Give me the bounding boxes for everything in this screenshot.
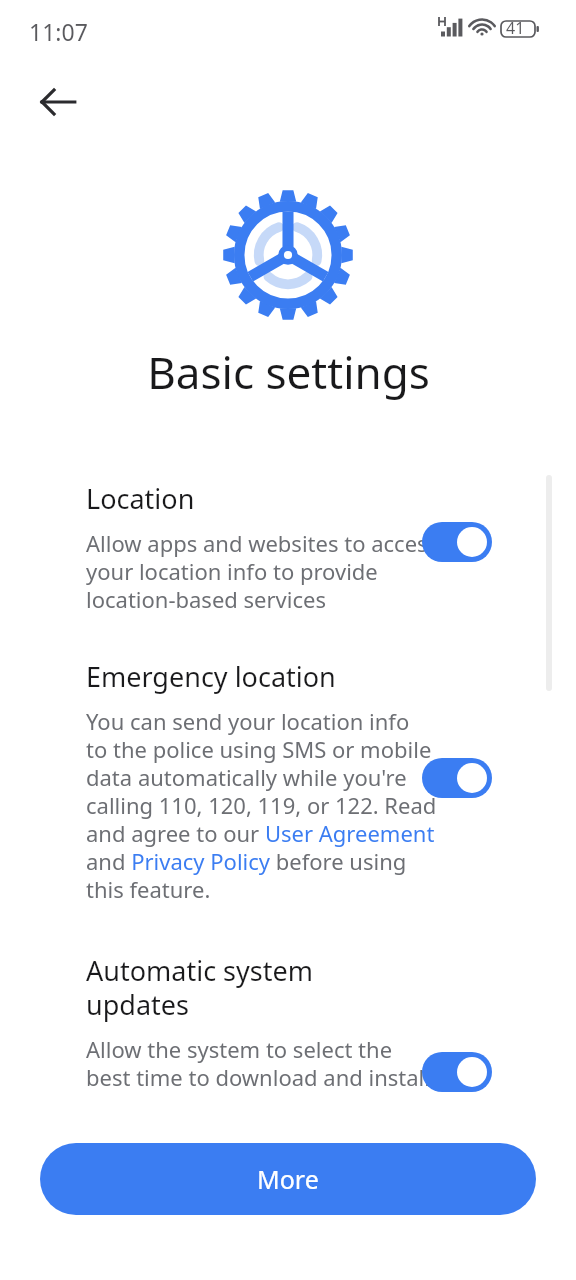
- staticText: Location: [86, 480, 195, 517]
- staticText: 11:07: [29, 16, 88, 47]
- button[interactable]: Emergency location toggle: [422, 758, 492, 798]
- button[interactable]: Back: [26, 70, 90, 134]
- button[interactable]: More: [40, 1143, 536, 1215]
- button[interactable]: Automatic system updates toggle: [422, 1052, 492, 1092]
- staticText: Allow apps and websites to access your l…: [86, 528, 439, 614]
- staticText: 41: [506, 17, 525, 39]
- staticText: Emergency location: [86, 658, 336, 695]
- staticText: Allow the system to select the best time…: [86, 1034, 430, 1092]
- staticText: Basic settings: [147, 342, 430, 402]
- staticText: More: [257, 1162, 319, 1196]
- button[interactable]: Location toggle: [422, 522, 492, 562]
- staticText: Automatic system updates: [86, 952, 313, 1023]
- staticText: You can send your location info to the p…: [86, 706, 437, 904]
